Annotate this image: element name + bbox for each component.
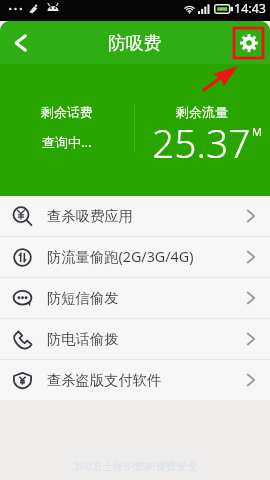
staticText: 防流量偷跑(2G/3G/4G) [47,247,194,267]
button[interactable]: 查杀吸费应用 [0,196,270,236]
button[interactable]: 防短信偷发 [0,278,270,318]
staticText: 剩余流量 [176,104,228,120]
staticText: 防吸费 [108,32,162,54]
button[interactable]: 查杀盗版支付软件 [0,360,270,400]
staticText: 14:43 [234,0,266,17]
staticText: 查杀吸费应用 [47,207,133,225]
staticText: 25.37 [152,116,251,169]
staticText: 查询中... [42,133,92,151]
button[interactable]: Back [4,27,36,59]
staticText: 360卫士保护您的资费安全 [73,459,198,473]
staticText: 防电话偷拨 [47,330,119,348]
staticText: 查杀盗版支付软件 [47,371,162,389]
button[interactable]: 防电话偷拨 [0,319,270,359]
button[interactable]: Settings [234,28,263,57]
button[interactable]: 防流量偷跑(2G/3G/4G) [0,237,270,277]
staticText: 剩余话费 [41,104,93,120]
staticText: 防短信偷发 [47,289,119,307]
